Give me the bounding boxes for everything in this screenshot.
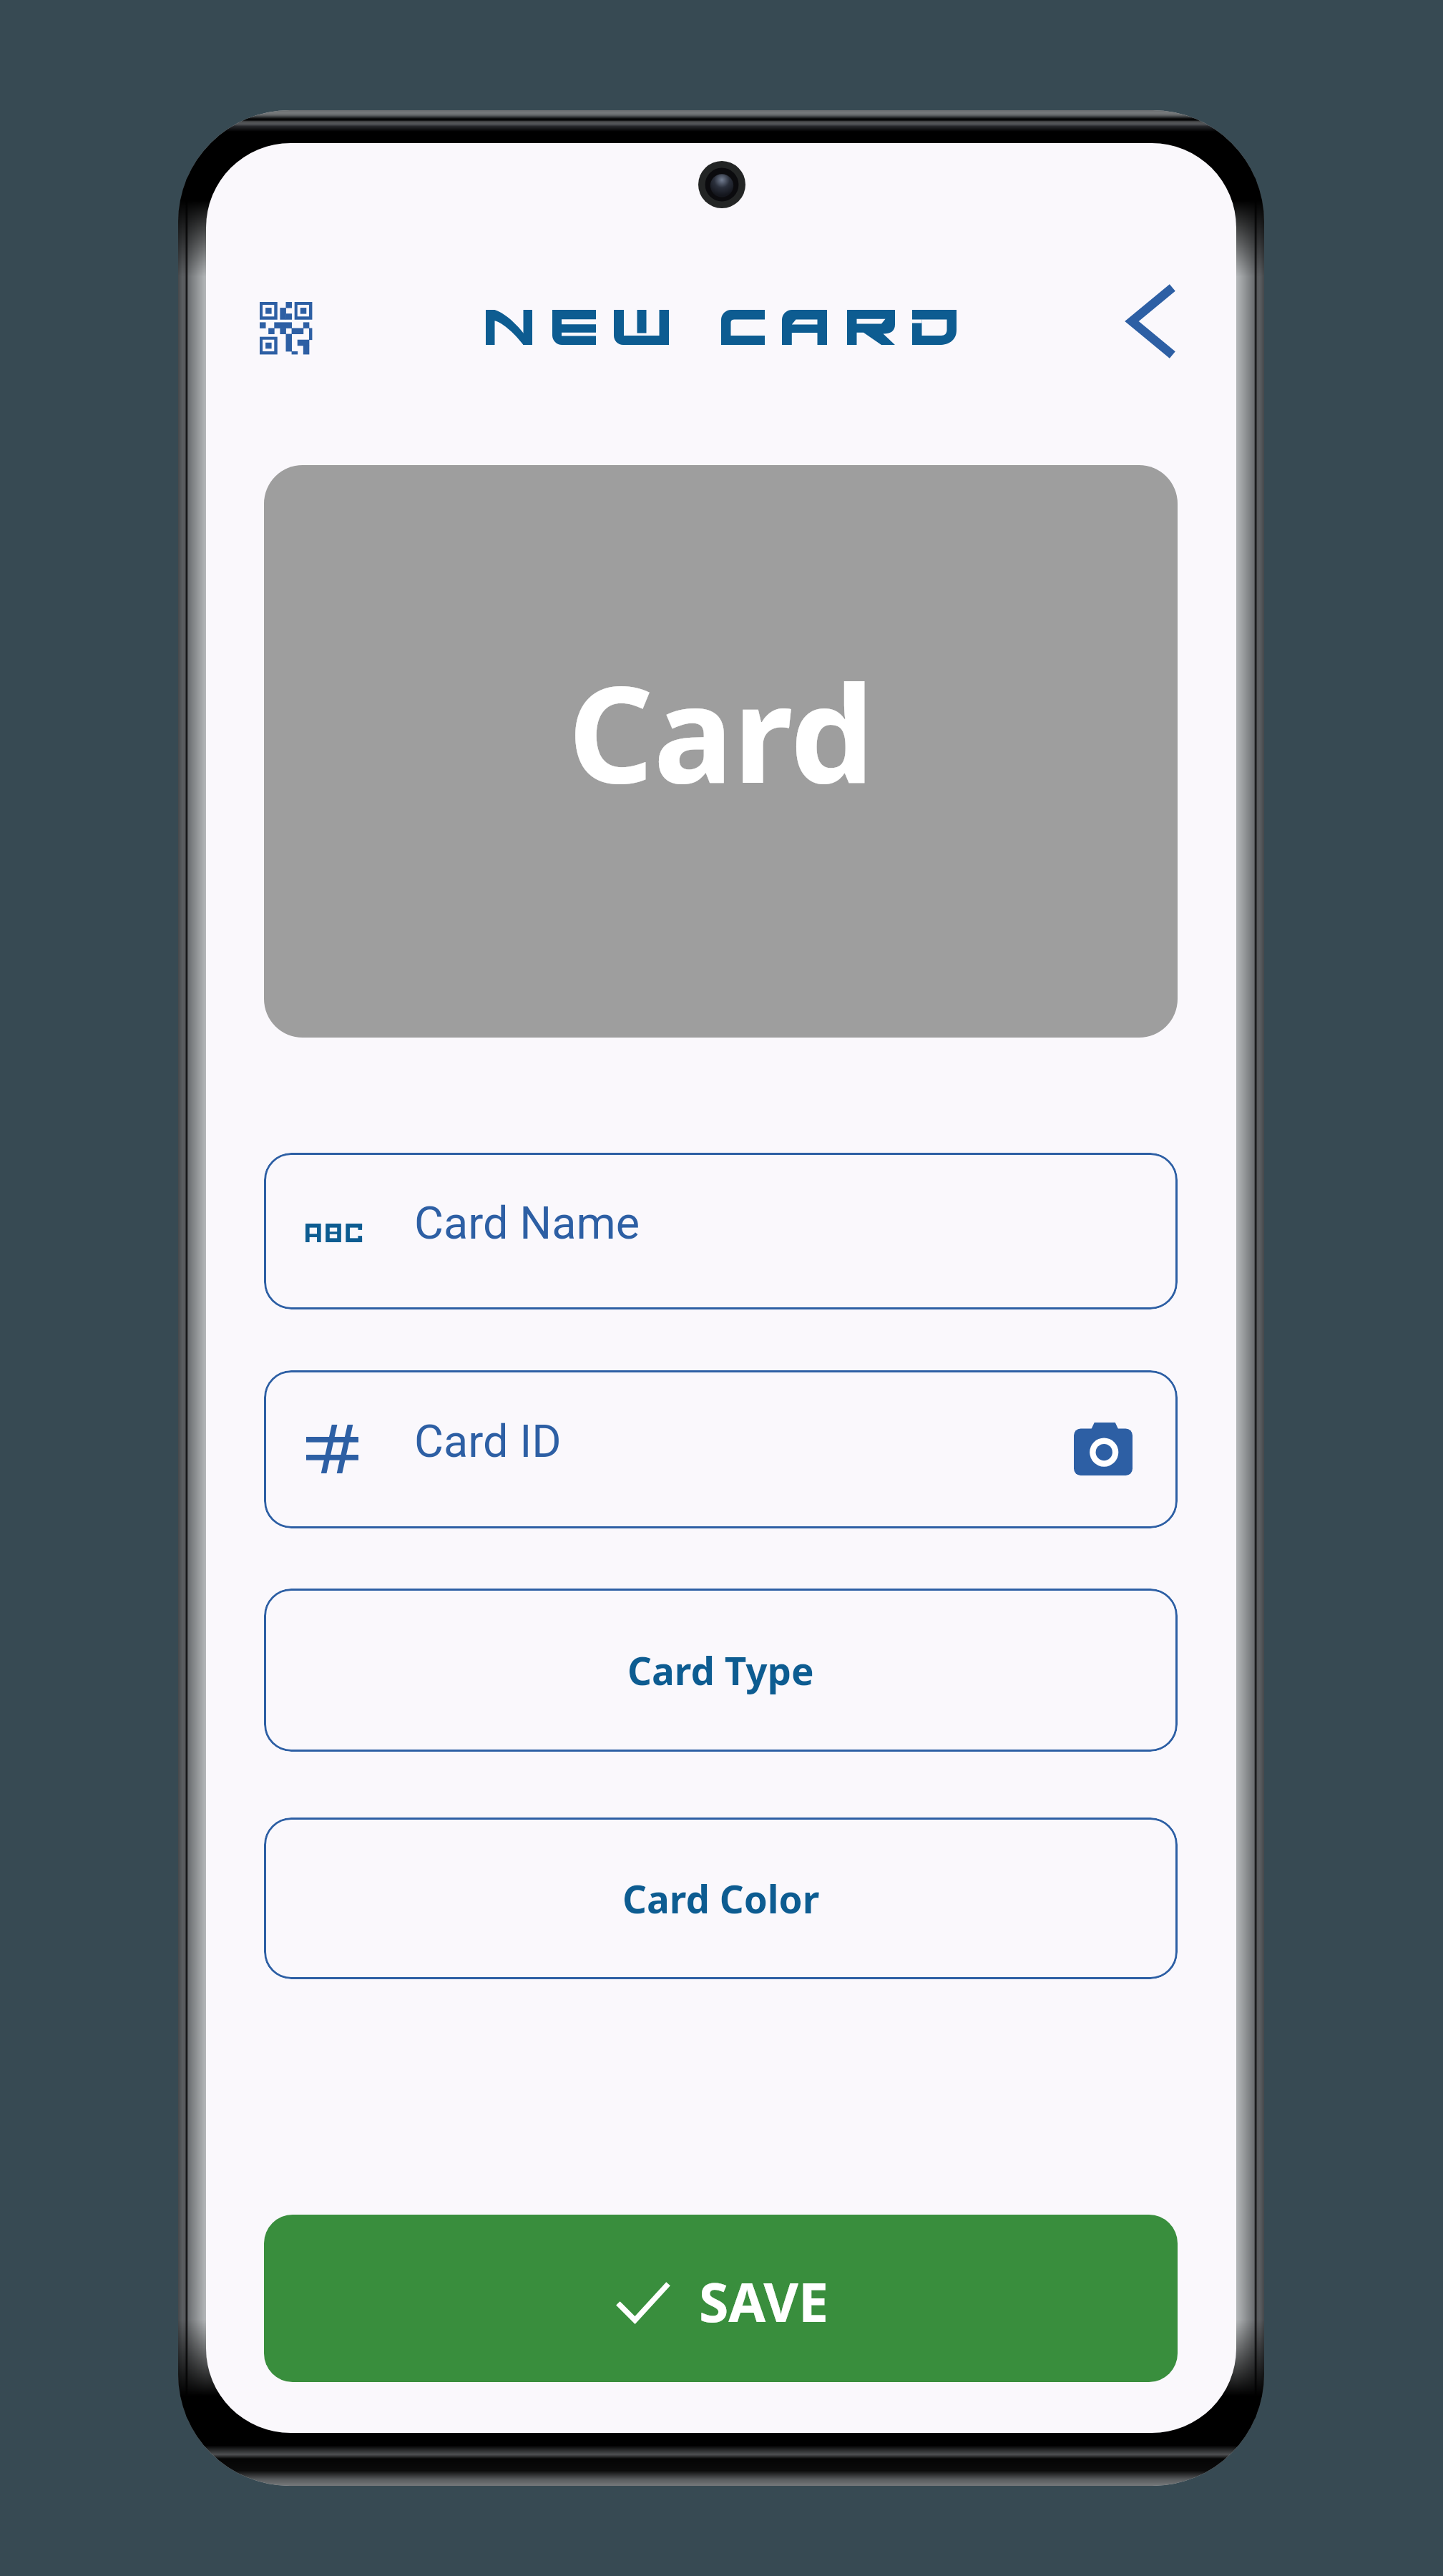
button[interactable] [486, 310, 957, 345]
button[interactable]: Card Color [264, 1818, 1178, 1979]
staticText: Card Name [414, 1197, 640, 1250]
button[interactable]: Card Type [264, 1589, 1178, 1752]
staticText: Card Color [622, 1873, 820, 1924]
button[interactable]: Back [1097, 264, 1203, 379]
staticText: Card Type [627, 1644, 814, 1696]
button[interactable]: Card [264, 465, 1178, 1038]
button[interactable]: Scan card with camera [1046, 1388, 1160, 1510]
button[interactable]: Scan QR code [237, 279, 334, 376]
button[interactable] [264, 1153, 1178, 1309]
button[interactable] [264, 1370, 1178, 1528]
staticText: SAVE [699, 2265, 828, 2338]
button[interactable] [264, 2215, 1178, 2382]
staticText: Card ID [414, 1415, 562, 1468]
staticText: Card [568, 640, 874, 821]
